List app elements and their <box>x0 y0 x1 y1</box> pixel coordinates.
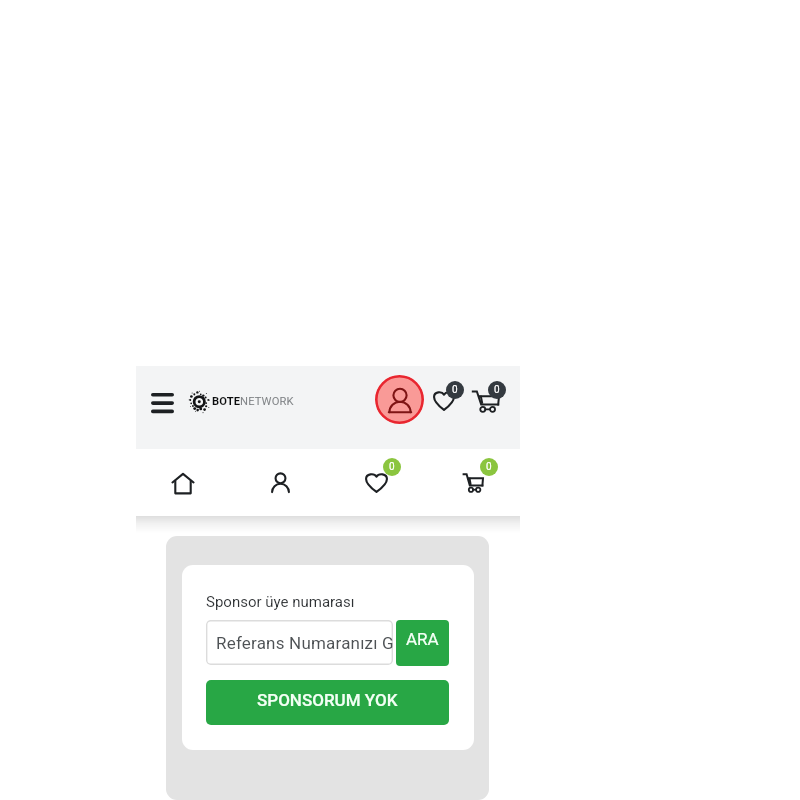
button[interactable]: Cart <box>424 449 520 516</box>
button[interactable]: Cart <box>466 380 504 418</box>
button[interactable]: Menu <box>143 384 181 422</box>
button[interactable]: Favorites <box>328 449 424 516</box>
staticText: 0 <box>486 461 492 473</box>
staticText: SPONSORUM YOK <box>257 690 398 710</box>
button[interactable]: BOTENETWORK <box>188 385 294 417</box>
button[interactable]: Home <box>136 449 232 516</box>
staticText: ARA <box>406 629 439 649</box>
button[interactable]: Favorites <box>426 380 462 416</box>
staticText: Sponsor üye numarası <box>206 593 355 611</box>
staticText: Referans Numaranızı Giriniz <box>216 633 393 653</box>
button[interactable]: Account <box>375 375 424 424</box>
staticText: BOTENETWORK <box>212 395 294 408</box>
button[interactable]: SPONSORUM YOK <box>206 680 449 725</box>
button[interactable]: ARA <box>396 620 449 666</box>
button[interactable]: Referans Numaranızı Giriniz <box>206 620 393 665</box>
staticText: 0 <box>389 461 395 473</box>
button[interactable]: Profile <box>232 449 328 516</box>
staticText: 0 <box>494 384 500 396</box>
staticText: 0 <box>452 384 458 396</box>
